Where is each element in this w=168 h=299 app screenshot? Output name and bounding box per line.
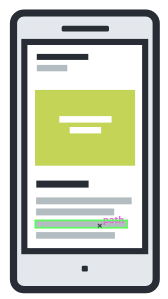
button[interactable]: Phone mockup bbox=[0, 0, 168, 299]
